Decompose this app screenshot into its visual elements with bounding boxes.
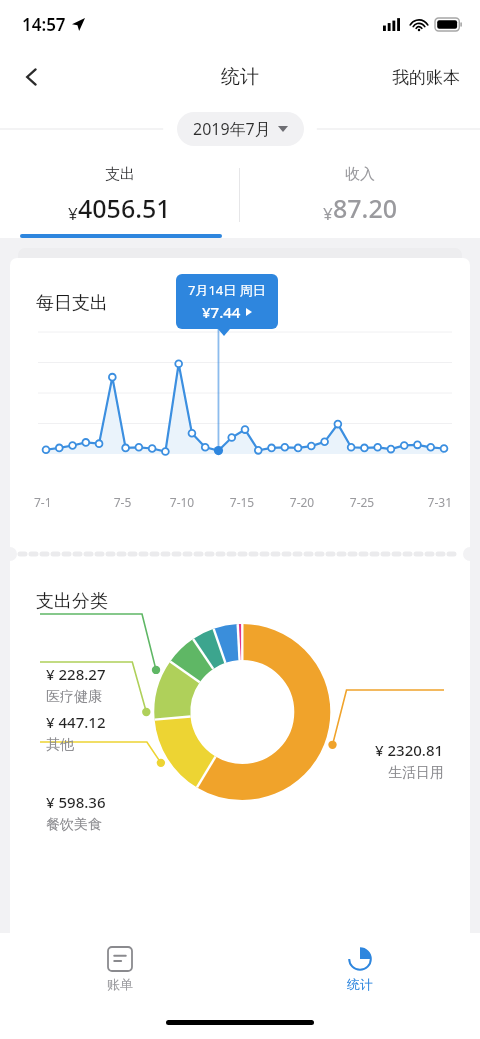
button[interactable]: 统计 (347, 947, 373, 992)
staticText: 统计 (347, 976, 373, 992)
button[interactable]: ¥ 598.36 (46, 792, 106, 834)
button[interactable]: 我的账本 (386, 59, 466, 96)
staticText: 生活日用 (388, 764, 444, 782)
button[interactable]: ¥ 228.27 (46, 664, 106, 706)
staticText: 7-5 (93, 494, 152, 510)
staticText: 我的账本 (392, 67, 460, 88)
staticText: 7-25 (332, 494, 392, 510)
staticText: ¥ (68, 202, 78, 225)
button[interactable]: 支出 (0, 152, 239, 238)
staticText: 2019年7月 (193, 118, 271, 140)
staticText: 每日支出 (36, 292, 108, 315)
staticText: 支出分类 (36, 590, 108, 613)
staticText: ¥ 447.12 (46, 712, 106, 732)
staticText: 7-10 (152, 494, 212, 510)
staticText: ¥ 2320.81 (375, 740, 444, 760)
staticText: 4056.51 (78, 191, 171, 225)
staticText: 7月14日 周日 (188, 281, 266, 299)
staticText: 14:57 (22, 13, 66, 36)
staticText: 7-15 (212, 494, 272, 510)
staticText: 统计 (221, 65, 259, 89)
staticText: ¥ 228.27 (46, 664, 106, 684)
staticText: 7-1 (34, 494, 93, 510)
staticText: ¥7.44 (202, 302, 241, 322)
staticText: 87.20 (333, 191, 398, 225)
staticText: 7-31 (392, 494, 452, 510)
button[interactable]: 账单 (107, 947, 133, 992)
staticText: 餐饮美食 (46, 816, 102, 834)
staticText: 收入 (345, 165, 375, 184)
button[interactable]: 2019年7月 (177, 112, 304, 146)
staticText: 支出 (105, 165, 135, 184)
staticText: ¥ 598.36 (46, 792, 106, 812)
button[interactable]: ¥ 447.12 (46, 712, 106, 754)
button[interactable]: Back (8, 53, 56, 101)
staticText: 账单 (107, 976, 133, 992)
staticText: ¥ (323, 202, 333, 225)
staticText: 其他 (46, 736, 74, 754)
button[interactable]: ¥ 2320.81 (375, 740, 444, 782)
button[interactable]: 收入 (240, 152, 480, 238)
staticText: 医疗健康 (46, 688, 102, 706)
button[interactable]: 7月14日 周日 (176, 274, 278, 329)
staticText: 7-20 (272, 494, 332, 510)
